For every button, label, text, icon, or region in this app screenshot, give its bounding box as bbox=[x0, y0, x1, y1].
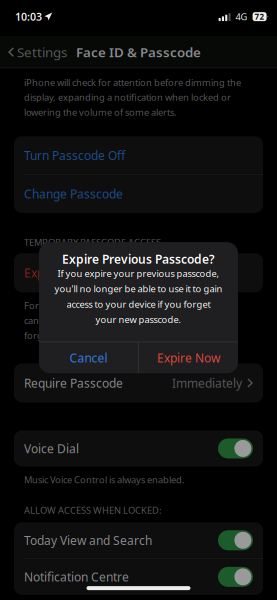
staticText: Turn Passcode Off bbox=[24, 147, 125, 163]
staticText: Settings bbox=[17, 43, 67, 61]
button[interactable]: Expire Now bbox=[139, 342, 238, 373]
staticText: lowering the volume of some alerts. bbox=[24, 106, 177, 118]
button[interactable]: Change Passcode bbox=[14, 175, 263, 213]
staticText: Cancel bbox=[70, 350, 108, 366]
staticText: 4G bbox=[236, 10, 248, 23]
staticText: Today View and Search bbox=[24, 532, 152, 548]
staticText: TEMPORARY PASSCODE ACCESS bbox=[24, 236, 161, 248]
staticText: Change Passcode bbox=[24, 186, 123, 202]
button[interactable]: Expire Previous Passcode Now bbox=[14, 253, 263, 292]
staticText: ALLOW ACCESS WHEN LOCKED: bbox=[24, 504, 162, 516]
staticText: you'll no longer be able to use it to ga… bbox=[54, 282, 222, 295]
staticText: your new passcode. bbox=[95, 313, 181, 326]
staticText: Voice Dial bbox=[24, 440, 79, 456]
button[interactable]: Voice Dial bbox=[14, 430, 263, 466]
button[interactable]: Notification Centre bbox=[14, 559, 263, 595]
staticText: Notification Centre bbox=[24, 569, 129, 585]
staticText: access to your device if you forget bbox=[66, 298, 210, 310]
staticText: forget your new one. bbox=[24, 329, 116, 341]
staticText: If you expire your previous passcode, bbox=[57, 267, 219, 279]
staticText: 10:03 bbox=[15, 9, 42, 24]
button[interactable]: Settings bbox=[0, 36, 75, 68]
button[interactable]: Turn Passcode Off bbox=[14, 136, 263, 174]
staticText: display, expanding a notification when l… bbox=[24, 91, 231, 103]
staticText: Expire Now bbox=[157, 350, 220, 366]
button[interactable]: Require Passcode bbox=[14, 363, 263, 402]
staticText: 72 bbox=[255, 11, 265, 22]
staticText: Require Passcode bbox=[24, 375, 123, 391]
staticText: Expire Previous Passcode? bbox=[62, 251, 215, 267]
button[interactable]: Cancel bbox=[39, 342, 138, 373]
staticText: Immediately bbox=[172, 375, 242, 391]
staticText: iPhone will check for attention before d… bbox=[24, 76, 241, 88]
staticText: Expire Previous Passcode Now bbox=[24, 265, 194, 281]
staticText: Face ID & Passcode bbox=[76, 43, 201, 61]
staticText: Music Voice Control is always enabled. bbox=[24, 473, 185, 486]
staticText: For the next 72 hours, your previous pas… bbox=[24, 299, 224, 312]
button[interactable]: Today View and Search bbox=[14, 522, 263, 558]
staticText: can still be used to unlock your iPhone … bbox=[24, 314, 214, 327]
